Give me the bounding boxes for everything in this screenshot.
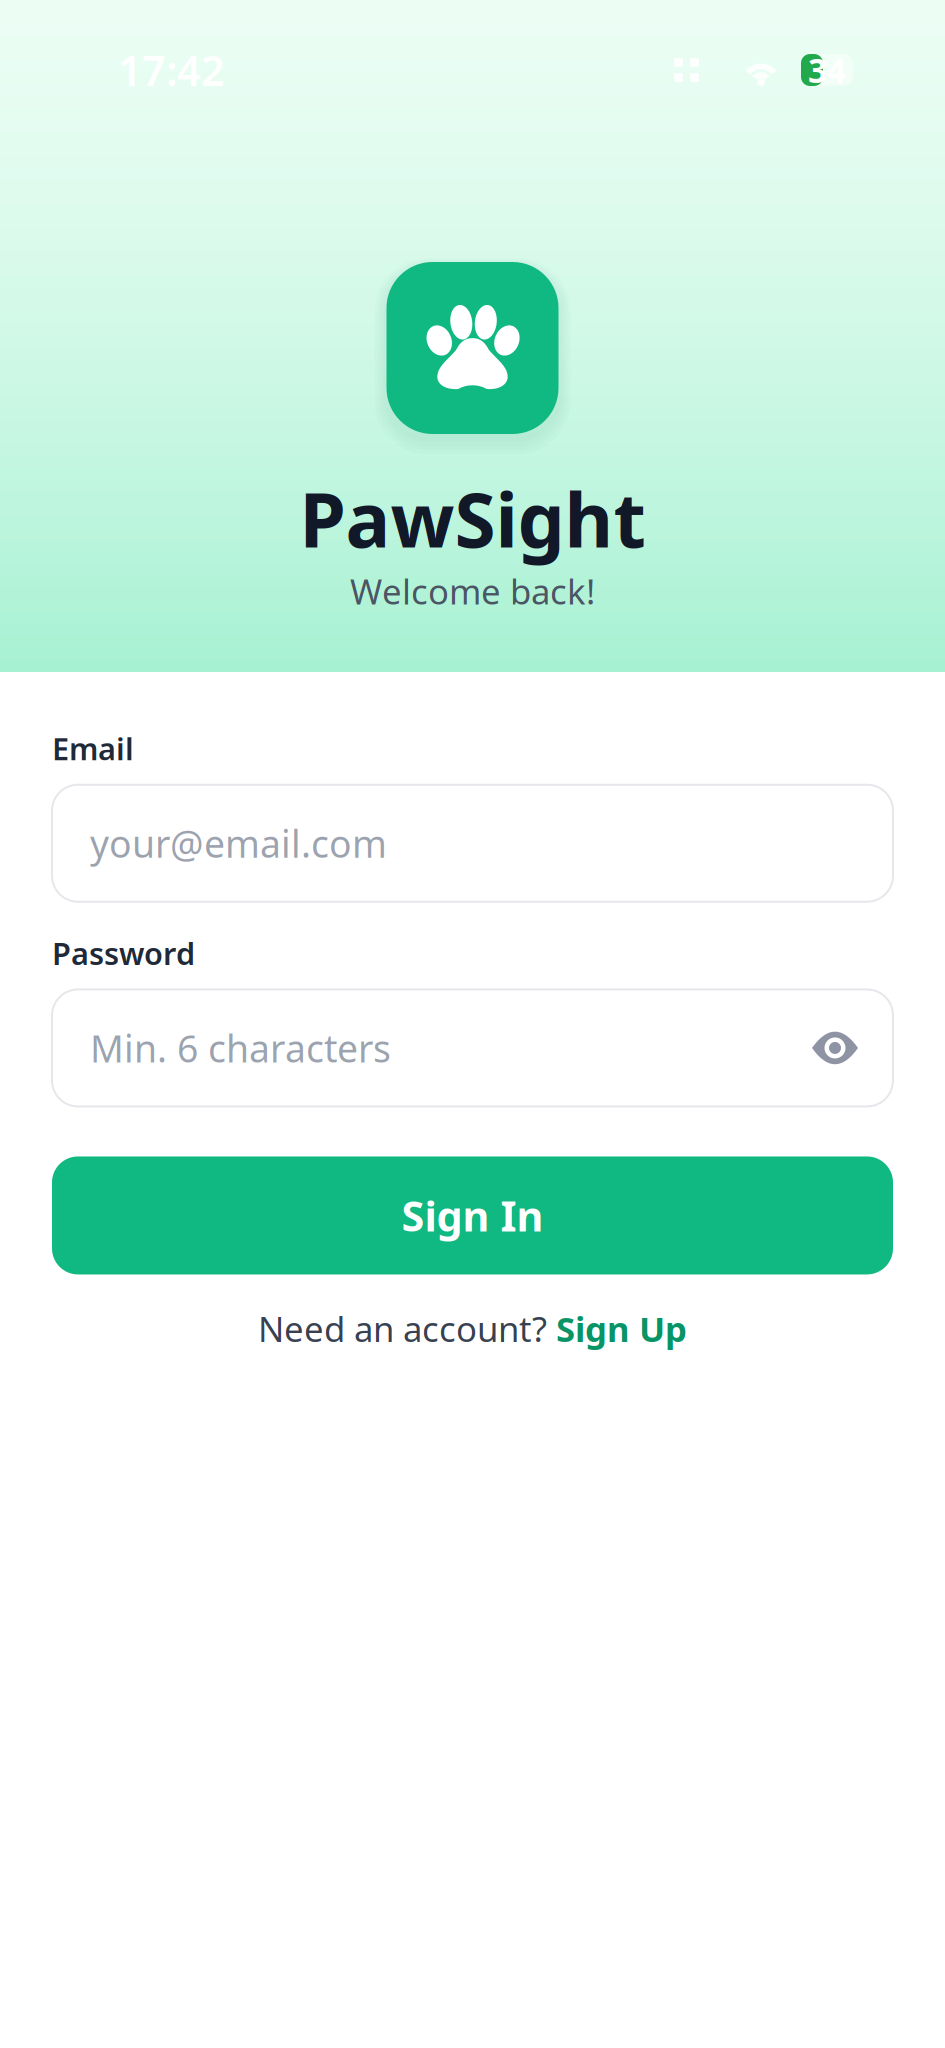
button[interactable]: Sign Up: [556, 1305, 687, 1351]
staticText: PawSight: [299, 469, 645, 568]
staticText: Password: [52, 933, 195, 973]
staticText: Sign Up: [556, 1305, 687, 1351]
staticText: 34: [808, 48, 846, 92]
staticText: Email: [52, 728, 134, 769]
staticText: Min. 6 characters: [90, 1023, 391, 1073]
staticText: 17:42: [118, 43, 225, 97]
button[interactable]: Sign In: [52, 1156, 893, 1274]
staticText: Need an account?: [258, 1305, 556, 1351]
button[interactable]: your@email.com: [52, 785, 893, 902]
staticText: your@email.com: [90, 818, 387, 868]
button[interactable]: Min. 6 characters: [52, 989, 893, 1106]
staticText: Sign In: [401, 1188, 543, 1243]
staticText: Welcome back!: [350, 568, 595, 614]
button[interactable]: Show password: [803, 1016, 867, 1080]
